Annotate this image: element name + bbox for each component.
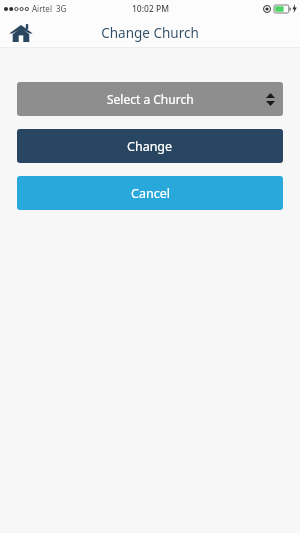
staticText: Select a Church (107, 91, 194, 107)
button[interactable]: Home (6, 18, 36, 48)
button[interactable]: Change (17, 129, 283, 163)
staticText: 3G (56, 3, 67, 14)
button[interactable]: Select a Church (17, 82, 283, 116)
staticText: Change Church (101, 24, 199, 42)
staticText: Cancel (131, 185, 170, 202)
staticText: Airtel (32, 3, 52, 14)
button[interactable]: Cancel (17, 176, 283, 210)
staticText: Change (127, 138, 173, 155)
staticText: 10:02 PM (132, 3, 169, 15)
